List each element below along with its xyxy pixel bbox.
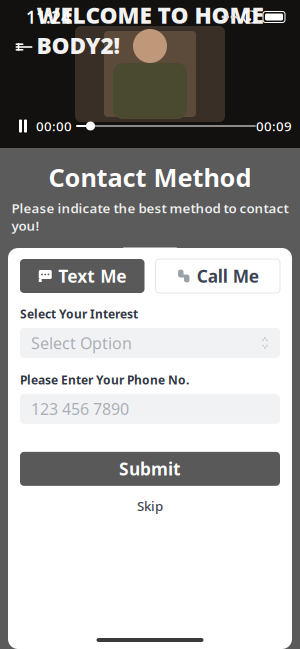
button[interactable]: 123 456 7890 (20, 394, 280, 424)
staticText: 123 456 7890 (31, 398, 129, 419)
staticText: Please Enter Your Phone No. (20, 372, 189, 388)
staticText: Select Your Interest (20, 306, 138, 322)
button[interactable]: Submit (20, 452, 280, 486)
button[interactable]: Back (4, 32, 44, 62)
button[interactable]: Text Me (20, 259, 144, 293)
staticText: 00:00 (36, 117, 72, 135)
staticText: Please indicate the best method to conta… (11, 199, 288, 234)
staticText: Submit (119, 457, 181, 480)
button[interactable]: Call Me (155, 259, 280, 293)
staticText: Select Option (31, 332, 132, 353)
button[interactable]: Pause (10, 115, 36, 137)
staticText: 00:09 (256, 117, 292, 135)
button[interactable]: Select Option (20, 328, 280, 358)
staticText: 11:24 (26, 5, 71, 28)
staticText: Contact Method (48, 160, 251, 194)
staticText: WELCOME TO HOME BODY2! (36, 0, 263, 60)
staticText: Text Me (58, 264, 126, 287)
staticText: Skip (137, 497, 163, 515)
staticText: Call Me (197, 264, 259, 287)
button[interactable]: Skip (8, 498, 292, 514)
